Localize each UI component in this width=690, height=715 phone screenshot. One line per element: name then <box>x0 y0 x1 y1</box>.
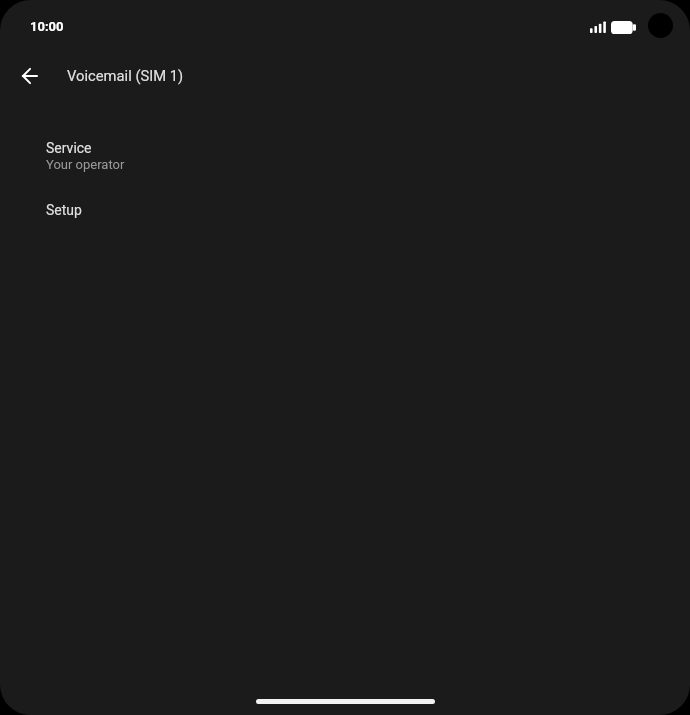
other: Mobile signal: 4 bars <box>590 21 606 33</box>
staticText: 10:00 <box>30 19 64 34</box>
button[interactable]: Navigate up <box>8 54 52 98</box>
staticText: Setup <box>46 202 82 218</box>
staticText: Voicemail (SIM 1) <box>67 67 184 84</box>
button[interactable]: Service <box>0 126 690 188</box>
button[interactable]: Setup <box>0 188 690 232</box>
other: Battery full <box>611 21 636 34</box>
staticText: Your operator <box>46 157 125 172</box>
staticText: Service <box>46 140 92 156</box>
